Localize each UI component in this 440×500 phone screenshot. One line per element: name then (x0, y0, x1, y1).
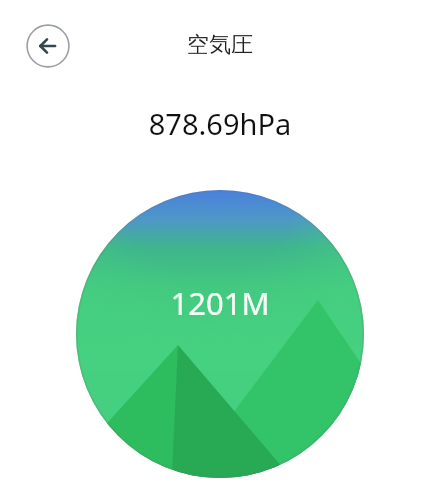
staticText: 空気圧 (0, 31, 440, 59)
button[interactable]: Back (26, 24, 70, 68)
staticText: 1201M (76, 282, 364, 324)
button[interactable]: Altitude 1201M (76, 190, 364, 478)
staticText: 878.69hPa (0, 104, 440, 143)
